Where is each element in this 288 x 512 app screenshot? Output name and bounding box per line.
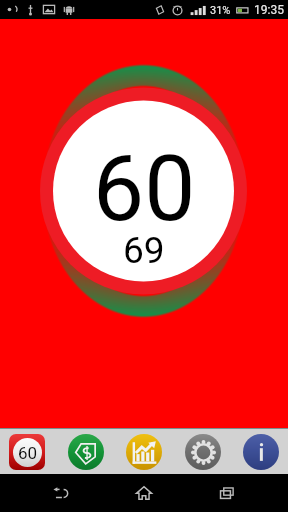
staticText: 69	[123, 229, 165, 272]
staticText: 60	[93, 136, 196, 243]
button[interactable]: Home	[122, 474, 166, 512]
button[interactable]: 60	[9, 434, 45, 470]
button[interactable]: Statistics	[126, 434, 162, 470]
staticText: 60	[18, 443, 38, 463]
button[interactable]: Info	[243, 434, 279, 470]
button[interactable]: Settings	[185, 434, 221, 470]
button[interactable]: Recents	[205, 474, 249, 512]
button[interactable]: Back	[39, 474, 83, 512]
staticText: 19:35	[254, 3, 284, 17]
staticText: 31%	[210, 4, 231, 17]
button[interactable]: Speed sign	[68, 434, 104, 470]
